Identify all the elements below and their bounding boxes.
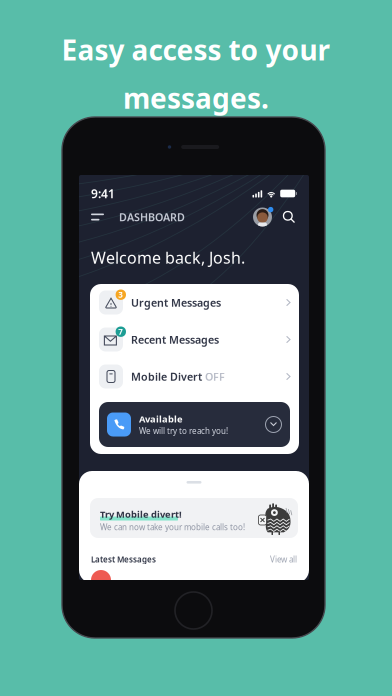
button[interactable]: Available — [99, 402, 290, 447]
button[interactable]: Mobile Divert — [90, 358, 299, 395]
button[interactable]: 3 — [90, 284, 299, 321]
staticText: 3 — [118, 289, 123, 300]
staticText: Try Mobile divert! — [100, 508, 182, 520]
staticText: Mobile Divert — [131, 369, 202, 384]
button[interactable]: Profile — [252, 206, 273, 227]
button[interactable]: 7 — [90, 321, 299, 358]
staticText: Available — [139, 413, 183, 425]
button[interactable]: Menu — [91, 207, 111, 227]
staticText: DASHBOARD — [119, 210, 185, 224]
staticText: 7 — [118, 326, 123, 337]
staticText: We can now take your mobile calls too! — [100, 522, 245, 532]
staticText: messages. — [123, 79, 269, 116]
staticText: We will try to reach you! — [139, 426, 228, 436]
staticText: Easy access to your — [61, 31, 330, 68]
staticText: OFF — [205, 369, 225, 384]
staticText: Welcome back, Josh. — [91, 247, 245, 268]
staticText: Latest Messages — [91, 554, 156, 565]
staticText: Urgent Messages — [131, 295, 221, 310]
button[interactable]: Search — [281, 209, 297, 225]
staticText: View all — [270, 554, 297, 565]
staticText: 9:41 — [91, 185, 115, 201]
staticText: Recent Messages — [131, 332, 219, 347]
button[interactable]: Try Mobile divert! — [90, 498, 298, 538]
button[interactable]: View all — [270, 554, 297, 565]
